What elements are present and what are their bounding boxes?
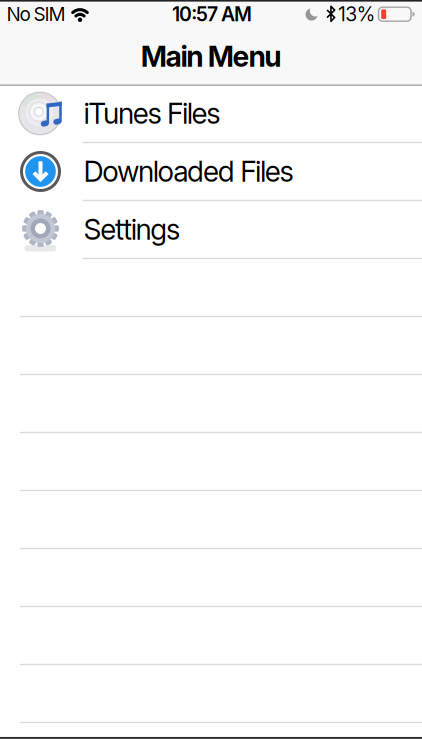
staticText: No SIM (6, 3, 65, 26)
button[interactable]: iTunes Files (0, 84, 422, 142)
staticText: Downloaded Files (83, 154, 293, 189)
button[interactable]: Settings (0, 200, 422, 258)
staticText: 13% (338, 2, 375, 26)
staticText: iTunes Files (83, 96, 220, 131)
button[interactable]: Downloaded Files (0, 142, 422, 200)
staticText: Settings (83, 212, 180, 247)
staticText: Main Menu (141, 39, 281, 74)
staticText: 10:57 AM (172, 2, 252, 26)
